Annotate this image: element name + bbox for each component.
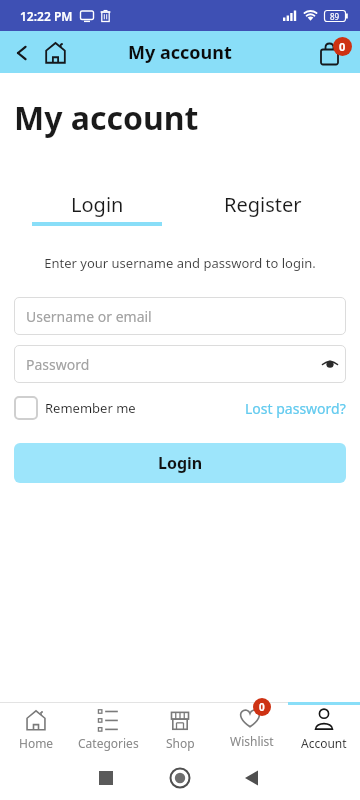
staticText: 0 [339,39,346,54]
button[interactable] [14,45,30,61]
staticText: Shop [166,735,195,751]
button[interactable]: Register [180,191,346,226]
staticText: Register [224,191,302,218]
button[interactable] [43,40,68,65]
staticText: Categories [78,735,139,751]
button[interactable]: Username or email [14,297,346,335]
staticText: My account [14,96,199,140]
staticText: Account [301,735,347,751]
button[interactable]: Login [14,191,180,226]
staticText: Password [26,355,90,374]
staticText: 0 [259,700,265,714]
staticText: My account [128,40,232,65]
staticText: Username or email [26,307,152,326]
button[interactable]: 0 [318,33,356,71]
staticText: 12:22 PM [20,8,73,24]
button[interactable]: Categories [72,702,144,758]
staticText: Login [158,452,203,474]
staticText: Login [71,191,124,218]
button[interactable]: Home [0,702,72,758]
staticText: Wishlist [230,733,274,749]
button[interactable] [14,396,38,420]
staticText: 89 [330,11,340,22]
button[interactable]: Account [288,702,360,758]
staticText: Remember me [45,399,136,417]
button[interactable]: Lost password? [245,399,346,418]
button[interactable]: Shop [144,702,216,758]
staticText: Enter your username and password to logi… [0,254,360,272]
button[interactable]: Password [14,345,346,383]
staticText: Home [19,735,54,751]
button[interactable]: Login [14,443,346,483]
button[interactable]: 0 [216,702,288,758]
